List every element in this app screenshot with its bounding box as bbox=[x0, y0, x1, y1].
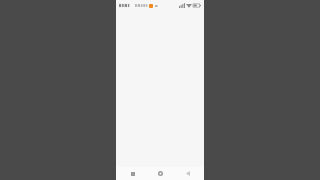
button[interactable]: Home bbox=[149, 167, 171, 180]
button[interactable]: Back bbox=[177, 167, 199, 180]
button[interactable]: Recent apps bbox=[122, 167, 144, 180]
